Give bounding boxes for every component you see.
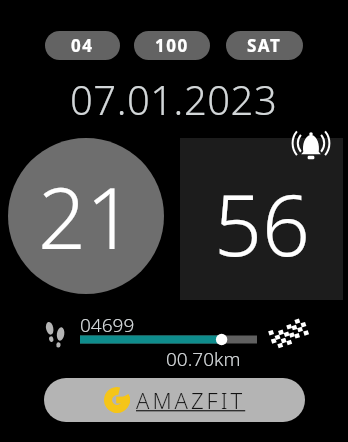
- staticText: 00.70km: [166, 346, 241, 372]
- staticText: 04699: [80, 312, 135, 338]
- button[interactable]: 100: [134, 31, 210, 60]
- button[interactable]: 56: [180, 138, 343, 300]
- staticText: AMAZFIT: [136, 385, 246, 415]
- button[interactable]: AMAZFIT: [44, 378, 305, 422]
- staticText: 21: [38, 159, 134, 273]
- button[interactable]: [80, 334, 257, 345]
- button[interactable]: Alarm: [291, 129, 331, 163]
- staticText: 56: [214, 166, 310, 280]
- staticText: SAT: [247, 34, 282, 57]
- staticText: 04: [71, 34, 94, 57]
- button[interactable]: 21: [8, 138, 164, 294]
- button[interactable]: SAT: [226, 31, 303, 60]
- staticText: 07.01.2023: [70, 72, 278, 126]
- button[interactable]: 04: [45, 31, 120, 60]
- staticText: 100: [155, 34, 189, 57]
